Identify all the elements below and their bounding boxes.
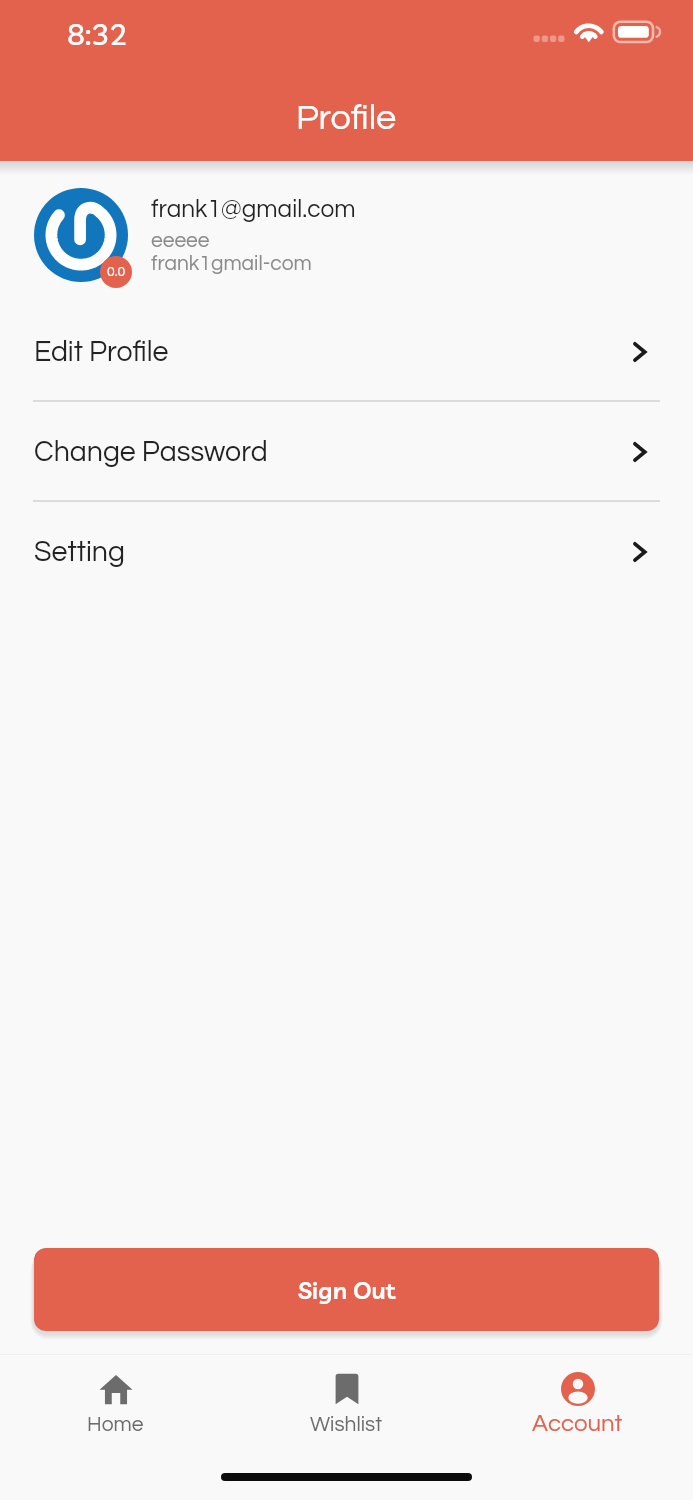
button[interactable]: Setting [0,527,693,577]
staticText: Wishlist [310,1414,383,1436]
staticText: Edit Profile [34,338,169,367]
staticText: Change Password [34,438,268,467]
button[interactable]: Wishlist [231,1355,462,1436]
button[interactable]: Change Password [0,427,693,477]
staticText: Setting [34,538,125,567]
other: Change Password [627,440,651,464]
staticText: Home [87,1414,144,1436]
staticText: 8:32 [67,15,128,53]
button[interactable]: Edit Profile [0,327,693,377]
button[interactable]: Sign Out [34,1248,659,1331]
other: Setting [627,540,651,564]
button[interactable]: Home [0,1355,231,1436]
other: Edit Profile [627,340,651,364]
button[interactable]: Account [462,1355,693,1436]
staticText: frank1@gmail.com [151,197,356,222]
staticText: Sign Out [298,1275,396,1305]
staticText: frank1gmail-com [151,253,312,275]
staticText: Profile [296,99,397,136]
staticText: 0.0 [107,265,126,279]
staticText: Account [532,1411,623,1436]
staticText: eeeee [151,230,210,252]
